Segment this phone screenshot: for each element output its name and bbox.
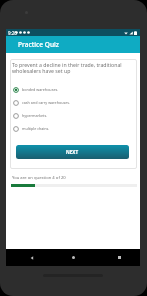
staticText: Practice Quiz [18,40,59,49]
staticText: To prevent a decline in their trade, tra… [12,61,134,75]
button[interactable]: cash and carry warehouses. [10,96,137,109]
button[interactable]: Home [67,251,80,264]
button[interactable]: Back [25,251,38,264]
staticText: cash and carry warehouses. [22,100,71,105]
staticText: multiple chains. [22,126,50,131]
button[interactable]: bonded warehouses. [10,83,137,96]
button[interactable]: hypermarkets. [10,109,137,122]
staticText: NEXT [66,149,79,155]
staticText: You are on question 4 of 20 [12,175,66,181]
button[interactable]: NEXT [16,145,129,159]
staticText: 9:26 [8,30,17,36]
staticText: hypermarkets. [22,113,48,118]
button[interactable]: Recent apps [113,251,126,264]
button[interactable]: multiple chains. [10,122,137,135]
staticText: bonded warehouses. [22,87,59,92]
